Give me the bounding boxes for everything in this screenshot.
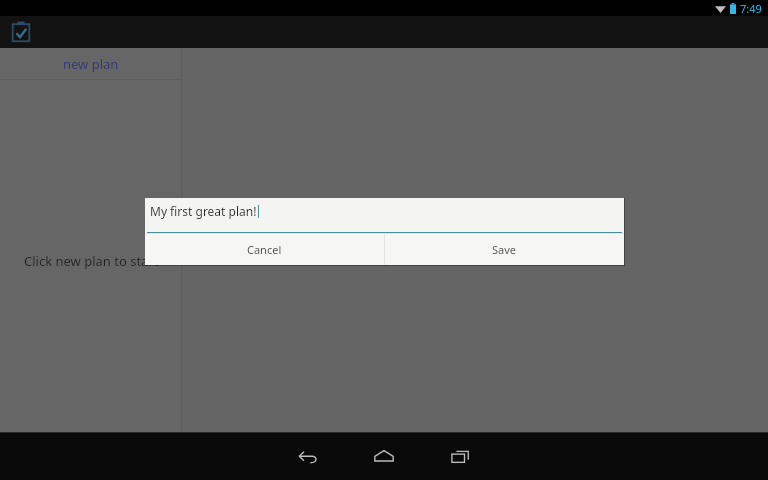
button[interactable]: Home [346, 436, 422, 476]
staticText: My first great plan! [150, 203, 257, 219]
button[interactable]: Recent apps [422, 436, 498, 476]
staticText: Save [492, 242, 517, 257]
staticText: new plan [63, 55, 119, 73]
button[interactable]: new plan [0, 48, 181, 79]
staticText: Cancel [247, 242, 282, 257]
button[interactable]: App icon [8, 19, 34, 45]
staticText: Click new plan to start [24, 252, 159, 270]
staticText: 7:49 [740, 1, 762, 16]
button[interactable]: Back [270, 436, 346, 476]
button[interactable]: Cancel [145, 234, 384, 265]
button[interactable]: Save [385, 234, 624, 265]
